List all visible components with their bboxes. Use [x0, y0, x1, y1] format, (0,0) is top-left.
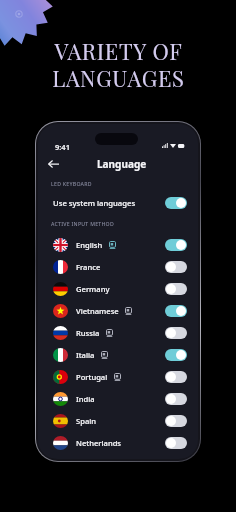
staticText: India [76, 394, 95, 404]
button[interactable]: Switch off [165, 371, 187, 383]
staticText: English [76, 240, 103, 250]
button[interactable]: Switch off [165, 393, 187, 405]
button[interactable]: Switch off [165, 437, 187, 449]
button[interactable]: Switch on [165, 239, 187, 251]
button[interactable]: Russia [38, 322, 198, 344]
button[interactable]: Switch off [165, 283, 187, 295]
button[interactable]: Spain [38, 410, 198, 432]
staticText: Russia [76, 328, 100, 338]
button[interactable]: France [38, 256, 198, 278]
button[interactable]: Portugal [38, 366, 198, 388]
button[interactable]: Italia [38, 344, 198, 366]
button[interactable]: Use system languages [38, 192, 198, 213]
button[interactable]: Switch on [165, 305, 187, 317]
staticText: Netherlands [76, 438, 122, 448]
button[interactable]: Switch on [165, 197, 187, 209]
staticText: Italia [76, 350, 95, 360]
button[interactable]: Switch off [165, 327, 187, 339]
staticText: VARIETY OF LANGUAGES [52, 36, 185, 92]
staticText: ACTIVE INPUT METHOD [51, 220, 114, 227]
staticText: Germany [76, 284, 110, 294]
staticText: Use system languages [53, 198, 136, 208]
staticText: Vietnamese [76, 306, 119, 316]
staticText: LED KEYBOARD [51, 180, 92, 187]
button[interactable]: Germany [38, 278, 198, 300]
staticText: Portugal [76, 372, 108, 382]
button[interactable]: Switch off [165, 415, 187, 427]
button[interactable]: Back [45, 155, 62, 172]
button[interactable]: Netherlands [38, 432, 198, 454]
staticText: Spain [76, 416, 97, 426]
button[interactable]: Vietnamese [38, 300, 198, 322]
button[interactable]: Switch off [165, 261, 187, 273]
staticText: 9:41 [55, 142, 70, 152]
button[interactable]: English [38, 234, 198, 256]
button[interactable]: India [38, 388, 198, 410]
staticText: Language [97, 157, 147, 171]
staticText: France [76, 262, 101, 272]
button[interactable]: Switch on [165, 349, 187, 361]
